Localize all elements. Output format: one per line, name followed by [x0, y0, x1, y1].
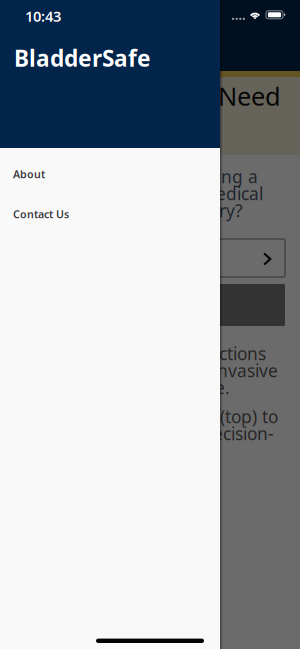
staticText: procedure, test, or surgery? — [15, 199, 243, 222]
staticText: Are you planning on having a — [15, 165, 258, 188]
button[interactable]: Get started — [15, 239, 285, 277]
staticText: treatments you may have. — [15, 376, 230, 399]
staticText: least (bottom) for your decision- — [15, 422, 274, 445]
staticText: BladderSafe — [14, 43, 151, 73]
button[interactable]: Learn more — [15, 284, 285, 326]
staticText: Contact Us — [13, 207, 69, 221]
staticText: About — [13, 167, 45, 181]
button[interactable]: About — [0, 154, 220, 194]
staticText: Rank what matters most (top) to — [15, 405, 278, 428]
staticText: 10:43 — [25, 6, 61, 26]
button[interactable]: Contact Us — [0, 194, 220, 234]
staticText: What You Need — [97, 79, 281, 113]
staticText: and surgery versus less invasive — [15, 359, 278, 382]
staticText: bladder cancer test or medical — [15, 182, 263, 205]
staticText: See how the treatment actions — [15, 342, 266, 365]
